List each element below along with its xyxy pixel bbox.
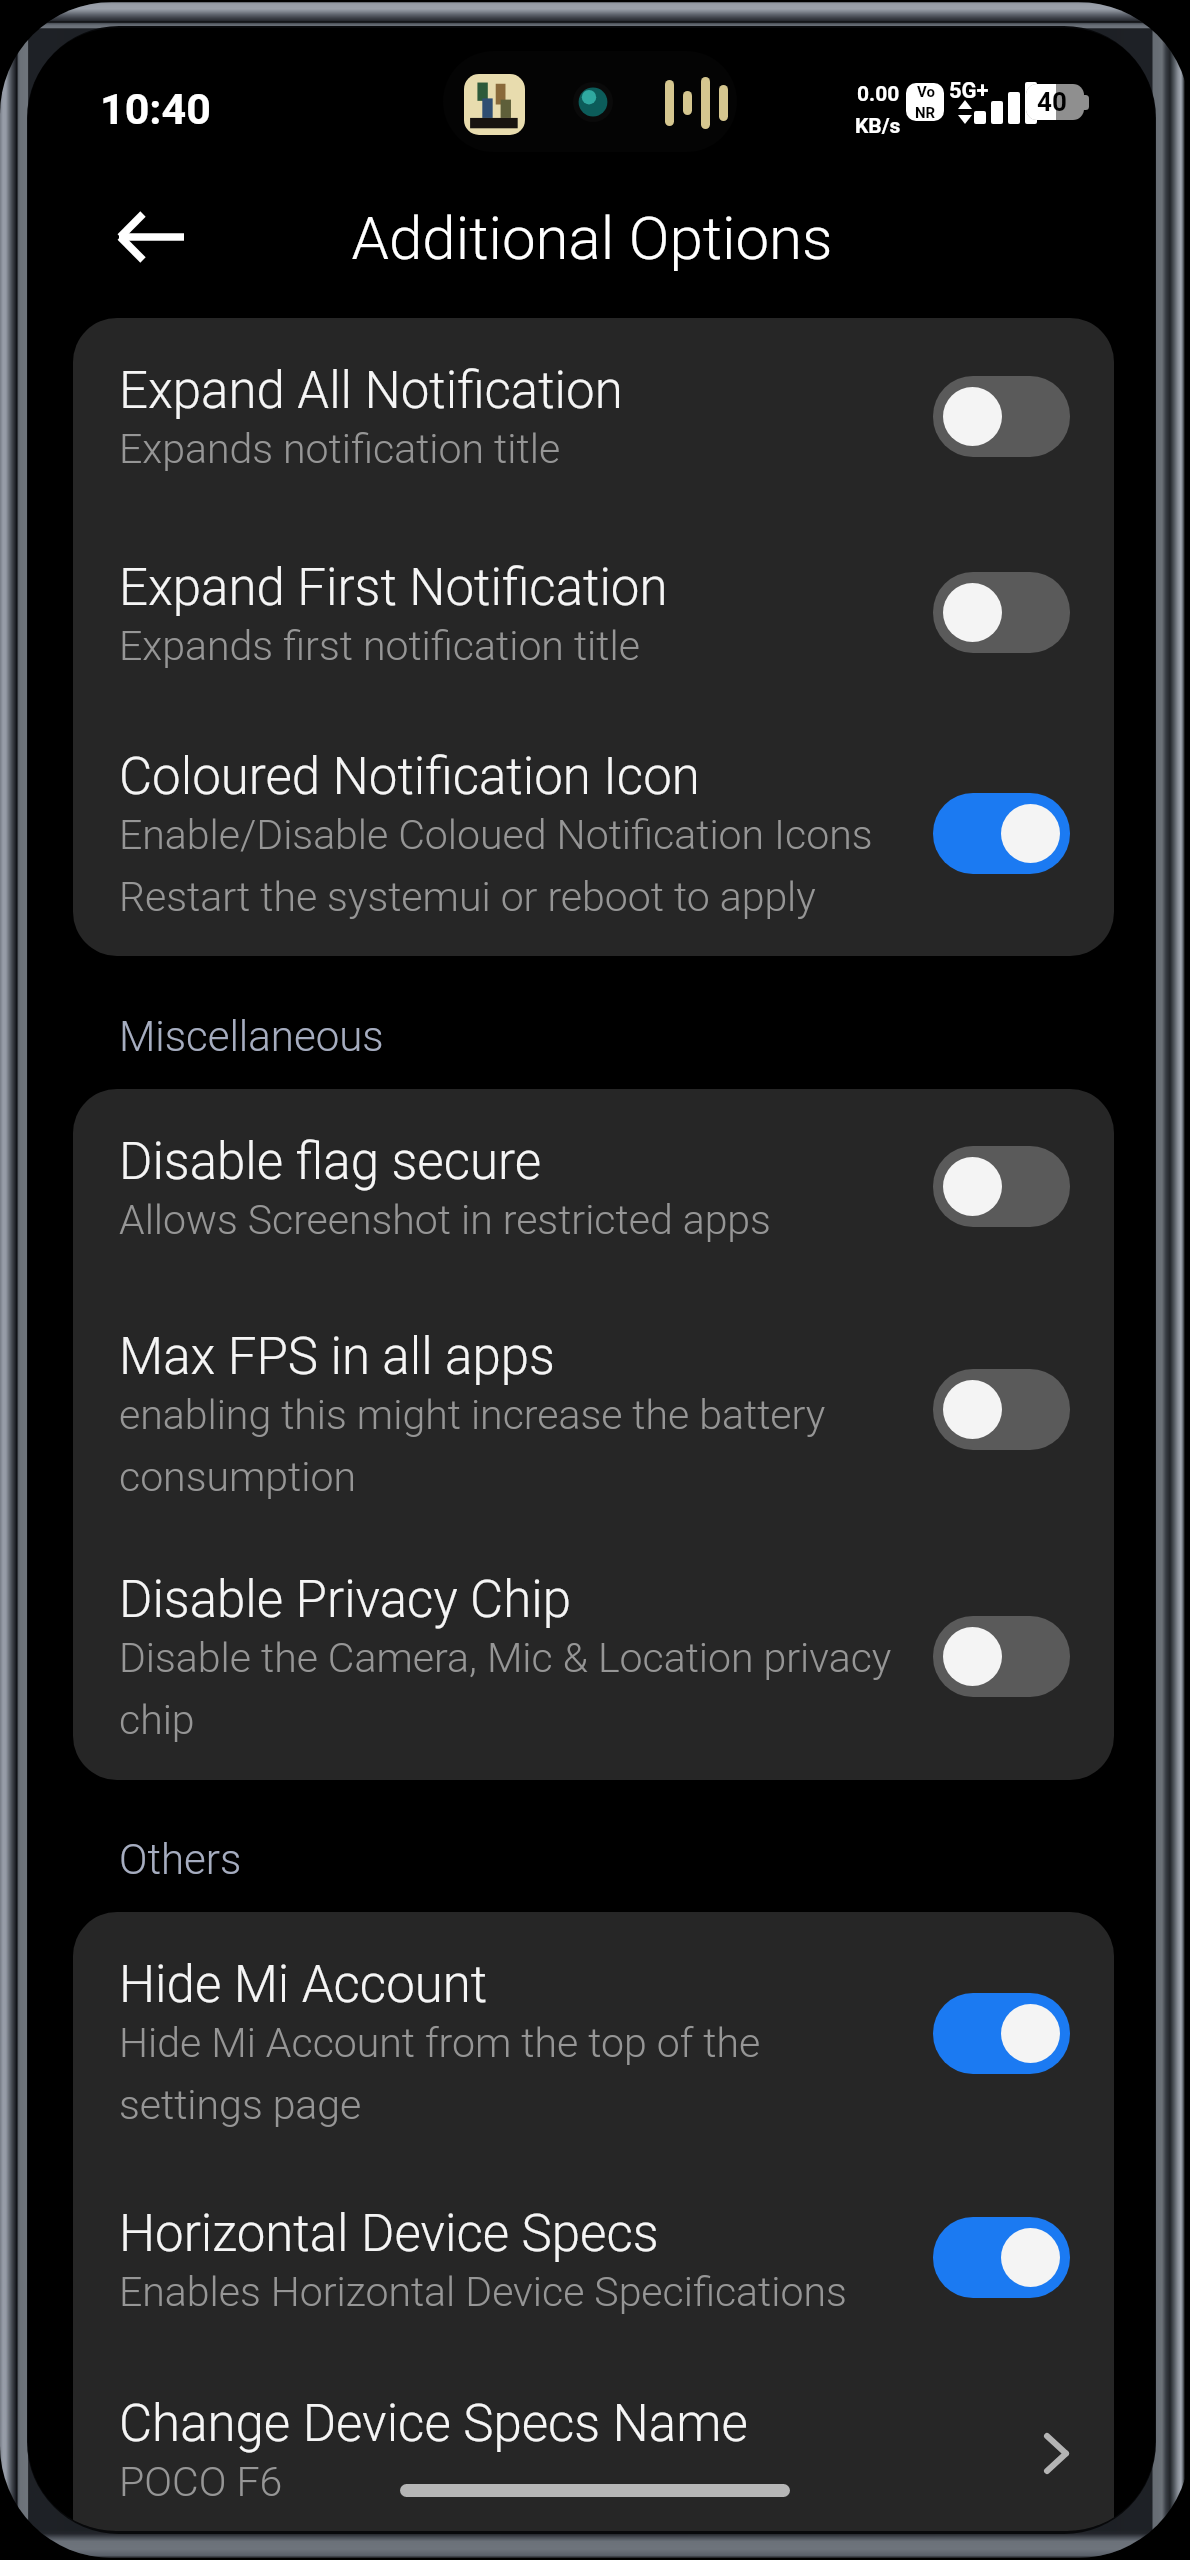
staticText: 40 bbox=[1037, 87, 1067, 117]
staticText: Change Device Specs Name bbox=[119, 2394, 748, 2454]
staticText: Horizontal Device Specs bbox=[119, 2204, 659, 2264]
button[interactable]: Max FPS in all apps bbox=[933, 1369, 1070, 1450]
staticText: Coloured Notification Icon bbox=[119, 747, 700, 807]
button[interactable] bbox=[73, 1284, 1114, 1529]
button[interactable]: Coloured Notification Icon bbox=[933, 793, 1070, 874]
staticText: enabling this might increase the battery… bbox=[119, 1391, 826, 1501]
button[interactable] bbox=[73, 703, 1114, 956]
button[interactable] bbox=[73, 513, 1114, 703]
button[interactable]: Disable flag secure bbox=[933, 1146, 1070, 1227]
button[interactable] bbox=[73, 1912, 1114, 2157]
staticText: Miscellaneous bbox=[119, 1012, 384, 1061]
staticText: Max FPS in all apps bbox=[119, 1327, 555, 1387]
button[interactable] bbox=[73, 2352, 1114, 2531]
staticText: KB/s bbox=[855, 114, 901, 139]
staticText: Hide Mi Account bbox=[119, 1955, 488, 2015]
button[interactable] bbox=[73, 318, 1114, 513]
staticText: Enable/Disable Coloued Notification Icon… bbox=[119, 811, 873, 921]
staticText: Additional Options bbox=[351, 203, 833, 273]
button[interactable]: Expand All Notification bbox=[933, 376, 1070, 457]
staticText: Expands first notification title bbox=[119, 622, 640, 670]
staticText: 5G+ bbox=[949, 78, 989, 104]
button[interactable] bbox=[73, 1089, 1114, 1284]
button[interactable]: Back bbox=[107, 193, 195, 281]
button[interactable]: Disable Privacy Chip bbox=[933, 1616, 1070, 1697]
staticText: Vo bbox=[917, 83, 935, 101]
staticText: Disable Privacy Chip bbox=[119, 1570, 571, 1630]
staticText: 0.00 bbox=[857, 82, 900, 107]
staticText: Expand First Notification bbox=[119, 558, 668, 618]
button[interactable]: Horizontal Device Specs bbox=[933, 2217, 1070, 2298]
button[interactable] bbox=[73, 2157, 1114, 2352]
staticText: Others bbox=[119, 1835, 242, 1884]
staticText: Hide Mi Account from the top of the sett… bbox=[119, 2019, 761, 2129]
staticText: 10:40 bbox=[100, 84, 211, 134]
staticText: Enables Horizontal Device Specifications bbox=[119, 2268, 847, 2316]
staticText: Expand All Notification bbox=[119, 361, 623, 421]
staticText: Disable the Camera, Mic & Location priva… bbox=[119, 1634, 892, 1744]
staticText: Expands notification title bbox=[119, 425, 561, 473]
staticText: NR bbox=[915, 104, 936, 121]
staticText: Disable flag secure bbox=[119, 1132, 542, 1192]
button[interactable]: Hide Mi Account bbox=[933, 1993, 1070, 2074]
button[interactable]: Expand First Notification bbox=[933, 572, 1070, 653]
staticText: POCO F6 bbox=[119, 2458, 283, 2506]
button[interactable] bbox=[73, 1529, 1114, 1780]
button[interactable]: Open Change Device Specs Name bbox=[1026, 2423, 1086, 2483]
staticText: Allows Screenshot in restricted apps bbox=[119, 1196, 771, 1244]
